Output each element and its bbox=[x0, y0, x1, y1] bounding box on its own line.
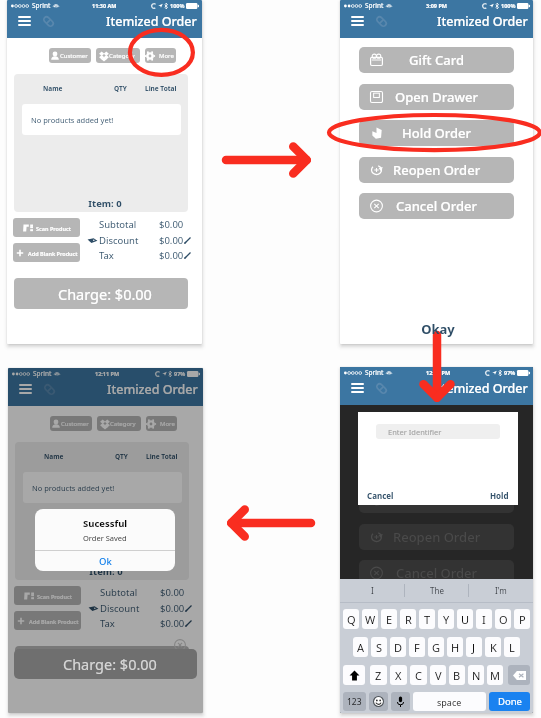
staticText: QTY bbox=[114, 84, 127, 93]
button[interactable]: Link bbox=[41, 381, 57, 397]
staticText: Sprint bbox=[33, 369, 52, 378]
staticText: T bbox=[424, 612, 431, 627]
button[interactable]: Gift Card bbox=[359, 47, 514, 73]
button[interactable]: Charge: $0.00 bbox=[15, 646, 189, 677]
button[interactable]: L bbox=[504, 637, 520, 657]
button[interactable]: Link bbox=[40, 13, 56, 29]
button[interactable]: D bbox=[390, 637, 406, 657]
button[interactable]: S bbox=[371, 637, 387, 657]
button[interactable]: J bbox=[466, 637, 482, 657]
button[interactable]: Ok bbox=[35, 551, 175, 571]
staticText: Item: 0 bbox=[18, 197, 188, 210]
button[interactable]: Category bbox=[97, 416, 141, 431]
button[interactable]: F bbox=[409, 637, 425, 657]
button[interactable]: Y bbox=[438, 609, 454, 629]
button[interactable]: Menu bbox=[15, 12, 33, 30]
button[interactable]: Scan Product bbox=[13, 218, 80, 237]
staticText: Enter Identifier bbox=[388, 427, 442, 437]
button[interactable]: R bbox=[400, 609, 416, 629]
button[interactable]: M bbox=[487, 665, 503, 685]
staticText: Charge: $0.00 bbox=[59, 652, 153, 672]
staticText: Sprint bbox=[32, 1, 51, 10]
staticText: Gift Card bbox=[409, 418, 464, 436]
button[interactable]: Cancel Order bbox=[359, 193, 514, 219]
button[interactable]: V bbox=[430, 665, 446, 685]
button[interactable]: Customer bbox=[49, 48, 91, 63]
button[interactable]: Cancel Order bbox=[359, 560, 514, 586]
button[interactable]: G bbox=[428, 637, 444, 657]
button[interactable]: Open Drawer bbox=[359, 84, 514, 110]
button[interactable]: I bbox=[340, 579, 405, 602]
button[interactable]: B bbox=[449, 665, 465, 685]
staticText: Done bbox=[498, 695, 522, 708]
staticText: F bbox=[414, 640, 420, 655]
button[interactable]: More bbox=[145, 48, 176, 63]
button[interactable]: Hold bbox=[490, 490, 509, 501]
button[interactable]: space bbox=[413, 692, 486, 711]
button[interactable]: W bbox=[362, 609, 378, 629]
staticText: A bbox=[357, 640, 365, 655]
button[interactable]: H bbox=[447, 637, 463, 657]
staticText: Cancel Order bbox=[396, 564, 478, 582]
button[interactable]: Charge: $0.00 bbox=[14, 278, 188, 309]
staticText: No products added yet! bbox=[31, 115, 114, 125]
staticText: Itemized Order bbox=[437, 13, 528, 30]
staticText: 3:09 PM bbox=[426, 2, 448, 9]
button[interactable]: Z bbox=[370, 665, 387, 685]
button[interactable]: A bbox=[353, 637, 368, 657]
button[interactable]: U bbox=[457, 609, 473, 629]
button[interactable]: Add Blank Product bbox=[13, 243, 80, 262]
button[interactable]: E bbox=[381, 609, 397, 629]
button[interactable]: C bbox=[410, 665, 427, 685]
button[interactable]: Scan Product bbox=[14, 586, 81, 605]
button[interactable]: N bbox=[468, 665, 484, 685]
button[interactable]: K bbox=[485, 637, 501, 657]
button[interactable]: Add Blank Product bbox=[14, 611, 81, 630]
staticText: $0.00 bbox=[160, 617, 185, 630]
button[interactable]: Charge: $0.00 bbox=[14, 649, 197, 679]
button[interactable]: Emoji bbox=[369, 692, 388, 711]
button[interactable]: Link bbox=[373, 13, 389, 29]
button[interactable]: Done bbox=[489, 692, 530, 711]
button[interactable]: Backspace bbox=[508, 665, 530, 685]
button[interactable]: T bbox=[419, 609, 435, 629]
staticText: 97% bbox=[174, 370, 186, 377]
button[interactable]: Gift Card bbox=[359, 414, 514, 440]
staticText: More bbox=[159, 52, 174, 60]
button[interactable]: Dictate bbox=[391, 692, 410, 711]
staticText: QTY bbox=[115, 452, 128, 461]
button[interactable]: More bbox=[146, 416, 177, 431]
staticText: Itemized Order bbox=[106, 13, 197, 30]
button[interactable]: Reopen Order bbox=[359, 157, 514, 183]
button[interactable]: Menu bbox=[348, 12, 366, 30]
staticText: I'm bbox=[495, 585, 507, 596]
button[interactable]: Category bbox=[96, 48, 140, 63]
staticText: Itemized Order bbox=[107, 381, 198, 398]
button[interactable]: Shift bbox=[343, 665, 365, 685]
button[interactable]: P bbox=[514, 609, 530, 629]
button[interactable]: Cancel bbox=[367, 490, 394, 501]
staticText: Ok bbox=[99, 555, 112, 568]
button[interactable]: Customer bbox=[50, 416, 92, 431]
button[interactable]: Reopen Order bbox=[359, 524, 514, 550]
button[interactable]: Q bbox=[343, 609, 359, 629]
staticText: Sprint bbox=[365, 368, 384, 377]
button[interactable]: Menu bbox=[16, 380, 34, 398]
staticText: 100% bbox=[170, 2, 185, 9]
button[interactable]: Hold Order bbox=[359, 487, 514, 513]
button[interactable]: O bbox=[495, 609, 511, 629]
button[interactable]: I'm bbox=[469, 579, 533, 602]
staticText: Add Blank Product bbox=[29, 618, 79, 625]
staticText: Name bbox=[43, 84, 63, 93]
button[interactable]: 123 bbox=[343, 692, 366, 711]
button[interactable]: X bbox=[390, 665, 407, 685]
button[interactable]: Hold Order bbox=[359, 120, 514, 146]
staticText: S bbox=[376, 640, 383, 655]
button[interactable]: Link bbox=[373, 380, 389, 396]
staticText: V bbox=[435, 668, 442, 683]
button[interactable]: Menu bbox=[348, 379, 366, 397]
staticText: $0.00 bbox=[159, 249, 184, 262]
button[interactable]: I bbox=[476, 609, 492, 629]
button[interactable]: The bbox=[405, 579, 469, 602]
